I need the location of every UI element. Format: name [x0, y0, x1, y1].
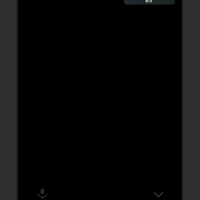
button[interactable]: Microphone: [32, 183, 52, 200]
button[interactable]: Now playing chip: [124, 0, 175, 6]
button[interactable]: Collapse: [148, 184, 168, 200]
